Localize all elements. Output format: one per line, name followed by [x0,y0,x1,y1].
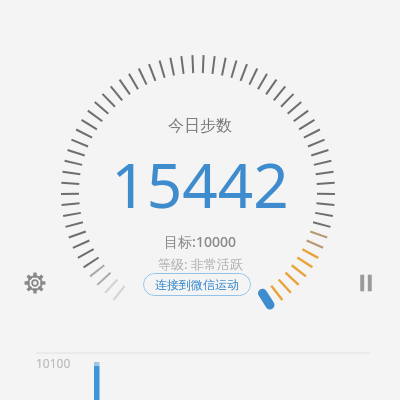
staticText: 连接到微信运动 [155,277,239,292]
staticText: 目标:10000 [164,232,236,251]
staticText: 15442 [111,142,289,226]
button[interactable]: 连接到微信运动 [143,273,251,296]
button[interactable]: Settings [16,264,54,302]
button[interactable]: Pause [347,264,385,302]
staticText: 今日步数 [168,116,232,136]
staticText: 等级: 非常活跃 [158,255,243,273]
staticText: 10100 [36,355,71,371]
